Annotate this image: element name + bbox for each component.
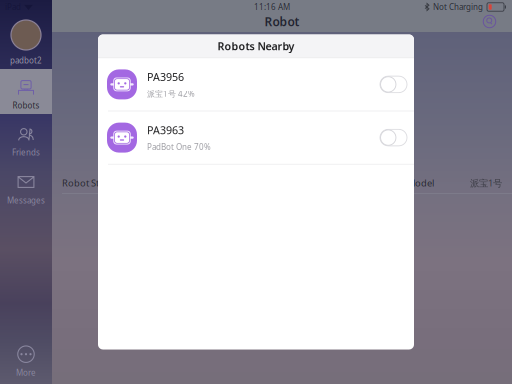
button[interactable]: More — [0, 340, 52, 384]
staticText: 11:16 AM — [254, 2, 290, 12]
button[interactable]: Messages — [0, 161, 52, 208]
staticText: iPad — [5, 2, 21, 12]
staticText: 派宝1号 — [470, 177, 502, 189]
staticText: Robots Nearby — [217, 39, 294, 53]
button[interactable]: PA3956 — [98, 58, 414, 111]
staticText: 派宝1号 42% — [147, 88, 195, 99]
staticText: Friends — [12, 147, 40, 158]
button[interactable]: Search — [479, 11, 500, 32]
button[interactable]: Friends — [0, 114, 52, 161]
staticText: PA3956 — [147, 70, 184, 84]
button[interactable]: PA3963 — [98, 111, 414, 164]
staticText: Robots — [12, 100, 39, 111]
staticText: Robot — [264, 13, 299, 29]
staticText: Robot Status — [62, 177, 117, 189]
staticText: More — [16, 367, 36, 378]
button[interactable]: Robots — [0, 69, 52, 114]
staticText: padbot2 — [10, 55, 42, 66]
staticText: Not Charging — [433, 2, 483, 12]
staticText: Model — [407, 177, 434, 189]
staticText: PadBot One 70% — [147, 142, 211, 152]
staticText: PA3963 — [147, 123, 184, 137]
staticText: Messages — [7, 195, 45, 206]
